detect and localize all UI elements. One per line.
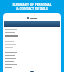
staticText: SUMMARY OF PERSONAL [12, 3, 52, 7]
button[interactable] [3, 17, 61, 19]
staticText: & CONTACT DETAILS [16, 7, 48, 11]
button[interactable]: Profile [30, 71, 34, 72]
